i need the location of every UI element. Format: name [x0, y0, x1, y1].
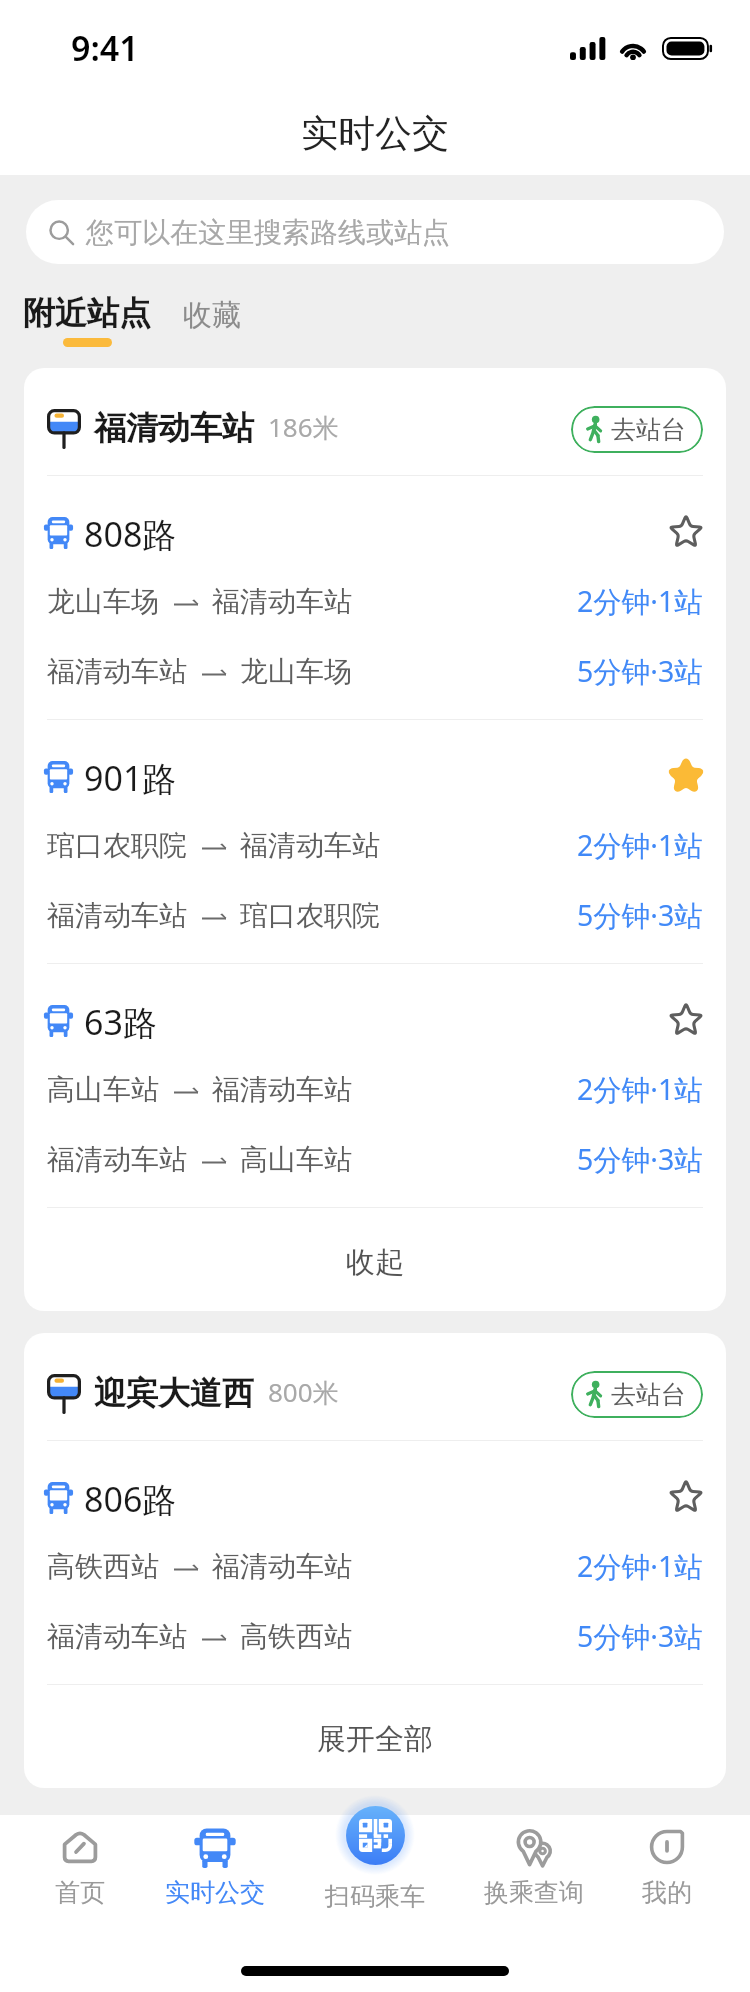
staticText: 2分钟·1站 — [577, 1547, 703, 1586]
staticText: 5分钟·3站 — [577, 1140, 703, 1179]
staticText: 2分钟·1站 — [577, 582, 703, 621]
button[interactable]: 808路 — [24, 476, 726, 719]
staticText: 迎宾大道西 — [94, 1373, 254, 1413]
button[interactable]: 福清动车站 — [24, 368, 726, 475]
staticText: 附近站点 — [23, 293, 151, 333]
staticText: 186米 — [268, 409, 339, 445]
staticText: 2分钟·1站 — [577, 826, 703, 865]
button[interactable]: 实时公交 — [160, 1815, 270, 1908]
staticText: 5分钟·3站 — [577, 896, 703, 935]
staticText: 实时公交 — [301, 110, 449, 157]
staticText: 9:41 — [71, 25, 139, 71]
staticText: 福清动车站 — [47, 1142, 187, 1177]
staticText: 福清动车站 — [212, 1549, 352, 1584]
button[interactable]: 收藏 — [664, 1474, 708, 1518]
staticText: 去站台 — [611, 1379, 686, 1410]
button[interactable]: 收藏 — [183, 293, 241, 334]
staticText: 去站台 — [611, 414, 686, 445]
staticText: 扫码乘车 — [325, 1881, 425, 1912]
button[interactable]: 换乘查询 — [478, 1815, 589, 1908]
staticText: 福清动车站 — [94, 408, 254, 448]
staticText: 福清动车站 — [240, 828, 380, 863]
staticText: 2分钟·1站 — [577, 1070, 703, 1109]
staticText: 5分钟·3站 — [577, 1617, 703, 1656]
staticText: 福清动车站 — [212, 584, 352, 619]
staticText: 901路 — [84, 755, 177, 801]
staticText: 实时公交 — [165, 1877, 265, 1908]
staticText: 高铁西站 — [47, 1549, 159, 1584]
button[interactable]: 首页 — [0, 1815, 160, 1908]
staticText: 展开全部 — [317, 1721, 433, 1758]
staticText: 高山车站 — [47, 1072, 159, 1107]
staticText: 高铁西站 — [240, 1619, 352, 1654]
button[interactable]: 收起 — [24, 1208, 726, 1311]
staticText: 换乘查询 — [484, 1877, 584, 1908]
staticText: 63路 — [84, 999, 157, 1045]
staticText: 808路 — [84, 511, 177, 557]
staticText: 我的 — [642, 1877, 692, 1908]
button[interactable]: 去站台 — [571, 1371, 703, 1418]
staticText: 高山车站 — [240, 1142, 352, 1177]
staticText: 806路 — [84, 1476, 177, 1522]
staticText: 龙山车场 — [47, 584, 159, 619]
button[interactable]: 展开全部 — [24, 1685, 726, 1788]
button[interactable]: 扫码乘车 — [300, 1815, 450, 1992]
button[interactable]: 收藏 — [664, 997, 708, 1041]
staticText: 您可以在这里搜索路线或站点 — [86, 215, 450, 250]
button[interactable]: 取消收藏 — [664, 753, 708, 797]
button[interactable]: 附近站点 — [23, 293, 151, 347]
staticText: 福清动车站 — [212, 1072, 352, 1107]
button[interactable]: 我的 — [589, 1815, 744, 1908]
staticText: 收起 — [346, 1244, 404, 1281]
button[interactable]: 收藏 — [664, 509, 708, 553]
staticText: 5分钟·3站 — [577, 652, 703, 691]
staticText: 福清动车站 — [47, 1619, 187, 1654]
staticText: 收藏 — [183, 297, 241, 334]
staticText: 福清动车站 — [47, 654, 187, 689]
button[interactable]: 63路 — [24, 964, 726, 1207]
button[interactable]: 搜索路线或站点 — [26, 200, 724, 264]
button[interactable]: 806路 — [24, 1441, 726, 1684]
button[interactable]: 901路 — [24, 720, 726, 963]
staticText: 福清动车站 — [47, 898, 187, 933]
staticText: 800米 — [268, 1374, 339, 1410]
staticText: 琯口农职院 — [47, 828, 187, 863]
staticText: 琯口农职院 — [240, 898, 380, 933]
staticText: 龙山车场 — [240, 654, 352, 689]
button[interactable]: 迎宾大道西 — [24, 1333, 726, 1440]
button[interactable]: 去站台 — [571, 406, 703, 453]
staticText: 首页 — [55, 1877, 105, 1908]
